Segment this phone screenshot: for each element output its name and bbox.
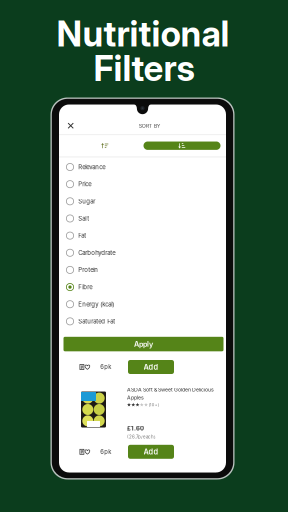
staticText: Carbohydrate [78,249,115,256]
staticText: SORT BY [139,123,161,129]
staticText: Energy (kcal) [78,301,114,308]
button[interactable]: Price [59,176,226,193]
staticText: Fat [78,232,86,239]
button[interactable]: Energy (kcal) [59,296,226,313]
button[interactable]: Apply [63,337,223,351]
button[interactable]: Protein [59,261,226,278]
staticText: Fibre [78,283,92,291]
staticText: Sugar [78,198,95,205]
staticText: 6pk [100,363,111,370]
staticText: Relevance [78,163,105,171]
button[interactable]: Add [128,360,174,374]
button[interactable]: Add [128,445,174,459]
button[interactable]: Relevance [59,158,226,175]
button[interactable]: Saturated Fat [59,313,226,330]
staticText: ASDA Soft & Sweet Golden Delicious [127,386,214,393]
button[interactable]: Sugar [59,193,226,210]
button[interactable]: Sort descending [143,141,220,150]
staticText: Add [143,363,158,371]
staticText: £1.60 [127,425,144,432]
staticText: Filters [93,47,194,89]
staticText: Apply [134,340,153,348]
button[interactable]: Close [63,118,78,133]
staticText: (26.7p/each) [127,434,156,439]
staticText: Add [143,447,158,456]
button[interactable]: Fat [59,227,226,244]
staticText: Nutritional [56,13,229,55]
button[interactable]: Fibre [59,278,226,296]
staticText: Price [78,180,91,188]
staticText: Apples [127,394,144,401]
staticText: Salt [78,215,89,222]
staticText: 6pk [100,448,111,455]
button[interactable]: Carbohydrate [59,244,226,261]
button[interactable]: Sort ascending [67,141,143,151]
button[interactable]: Salt [59,210,226,227]
staticText: (10+) [149,402,159,407]
staticText: Saturated Fat [78,318,115,325]
staticText: Protein [78,266,98,274]
